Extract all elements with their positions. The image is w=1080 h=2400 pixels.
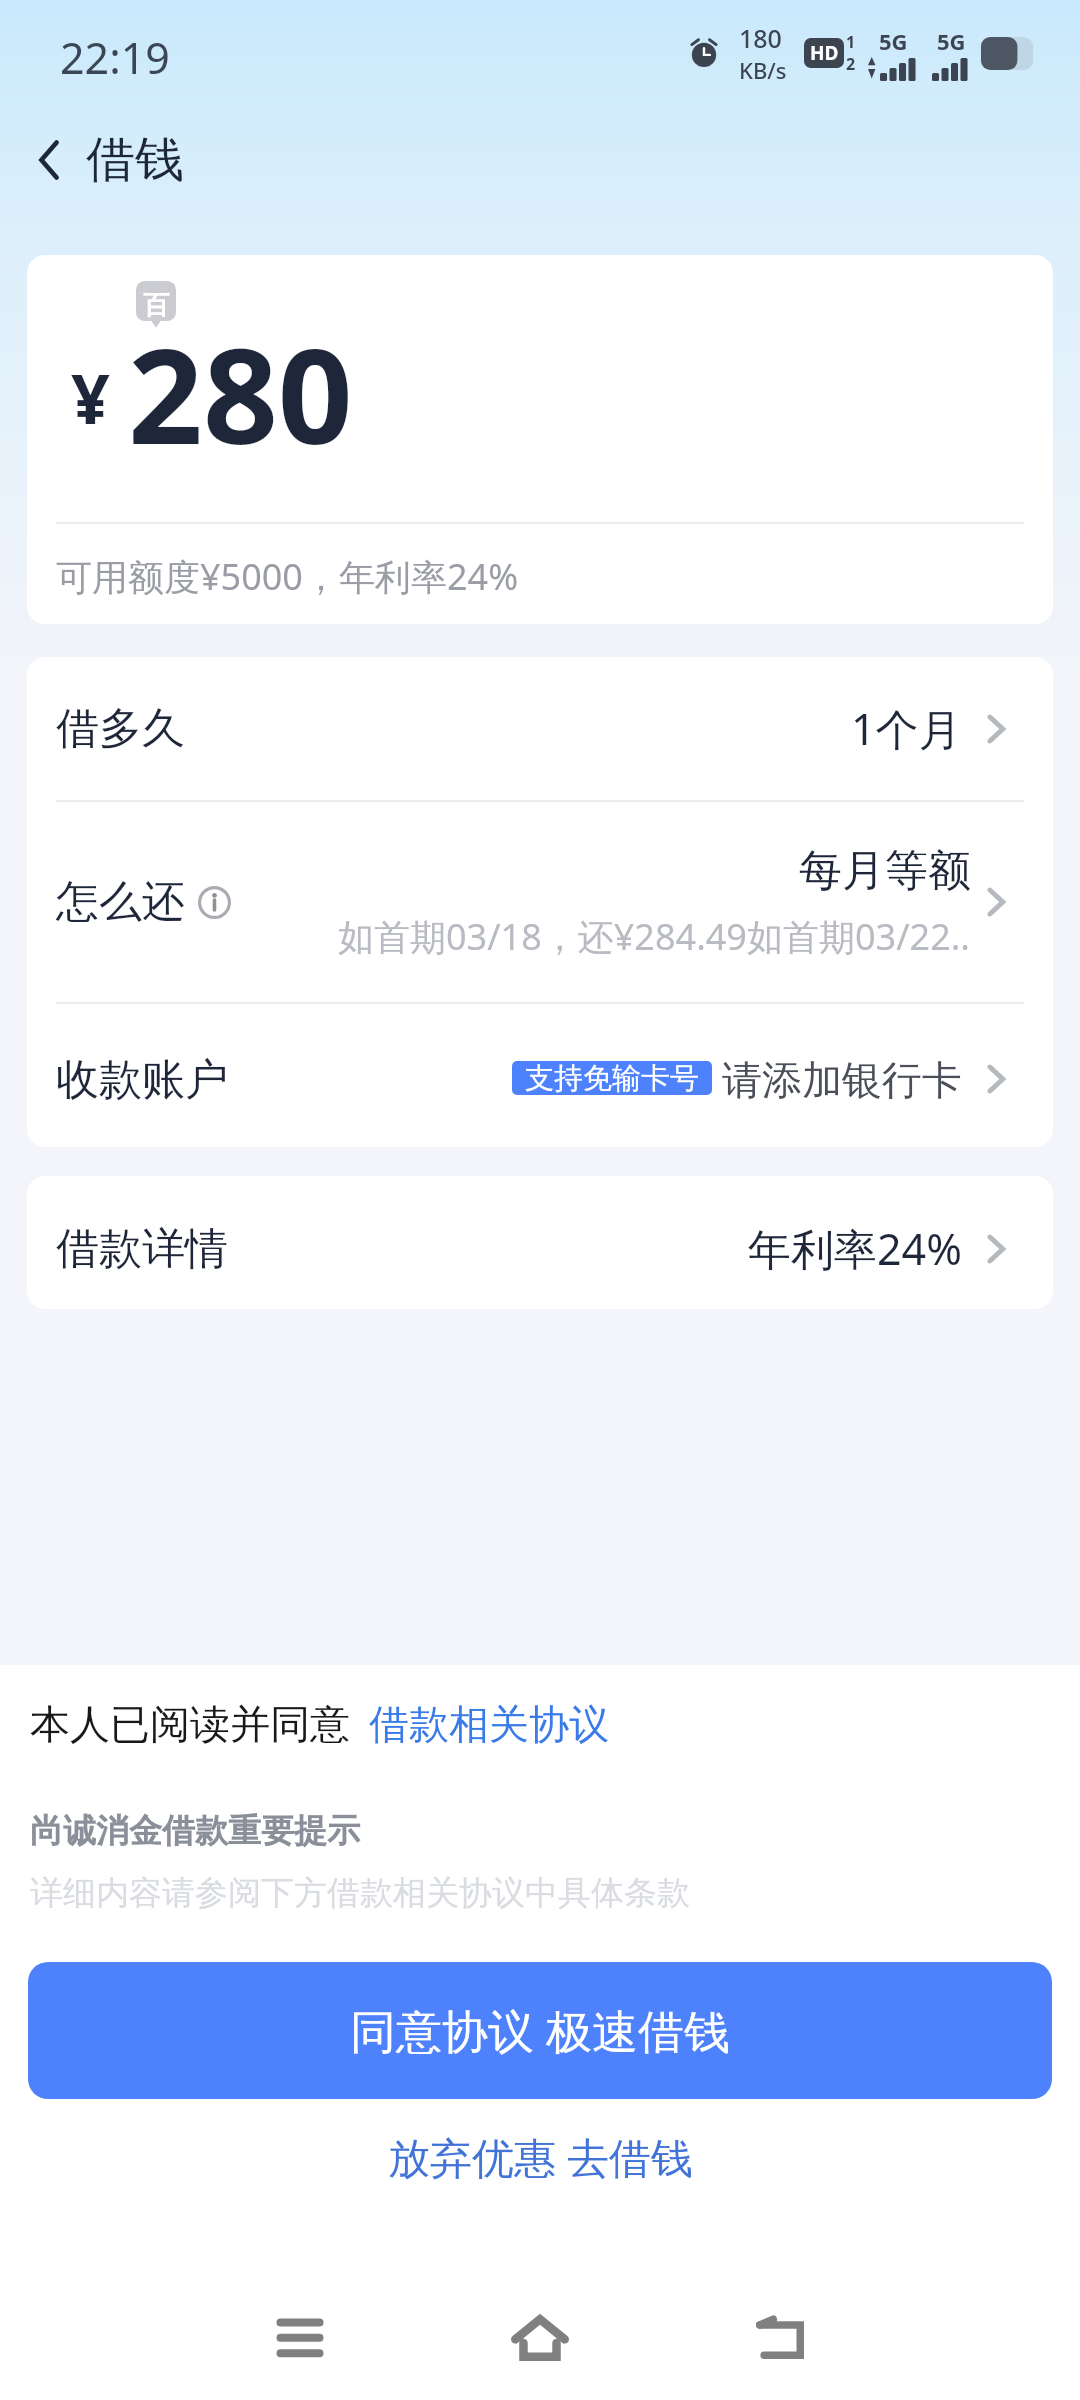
staticText: 如首期03/18，还¥284.49如首期03/22..: [338, 912, 971, 961]
staticText: 5G: [937, 26, 966, 56]
button[interactable]: 收款账户: [27, 1004, 1053, 1147]
staticText: 1个月: [851, 699, 962, 758]
button[interactable]: 借款详情: [27, 1176, 1053, 1309]
staticText: 同意协议 极速借钱: [350, 1999, 730, 2062]
staticText: 2: [846, 53, 856, 75]
staticText: 百: [143, 289, 169, 322]
staticText: 22:19: [60, 28, 170, 87]
button[interactable]: 本人已阅读并同意: [30, 1699, 350, 1749]
staticText: 请添加银行卡: [722, 1055, 962, 1105]
staticText: 借款详情: [56, 1222, 228, 1276]
button[interactable]: 借款相关协议: [369, 1699, 609, 1749]
staticText: 放弃优惠 去借钱: [388, 2128, 693, 2185]
staticText: ¥: [71, 351, 110, 444]
staticText: KB/s: [739, 55, 787, 85]
button[interactable]: Recents: [240, 2300, 360, 2376]
staticText: 详细内容请参阅下方借款相关协议中具体条款: [30, 1872, 690, 1914]
button[interactable]: 借多久: [27, 657, 1053, 800]
staticText: 借钱: [86, 129, 184, 191]
staticText: 可用额度¥5000，年利率24%: [56, 552, 519, 601]
staticText: 5G: [879, 26, 908, 56]
staticText: 1: [846, 31, 856, 53]
button[interactable]: Back: [0, 105, 98, 215]
button[interactable]: 百: [27, 255, 1053, 624]
button[interactable]: 怎么还: [27, 802, 1053, 1002]
staticText: 280: [128, 304, 353, 482]
staticText: 180: [739, 21, 782, 55]
staticText: 怎么还: [56, 875, 185, 929]
staticText: 年利率24%: [748, 1219, 962, 1278]
staticText: 支持免输卡号: [525, 1061, 699, 1094]
button[interactable]: Back: [720, 2300, 840, 2376]
staticText: 尚诚消金借款重要提示: [30, 1810, 360, 1852]
button[interactable]: Home: [480, 2300, 600, 2376]
staticText: HD: [810, 40, 839, 66]
button[interactable]: 同意协议 极速借钱: [28, 1962, 1052, 2099]
staticText: 收款账户: [56, 1053, 228, 1107]
button[interactable]: 放弃优惠 去借钱: [0, 2128, 1080, 2185]
staticText: 借多久: [56, 702, 185, 756]
staticText: 每月等额: [799, 844, 971, 898]
